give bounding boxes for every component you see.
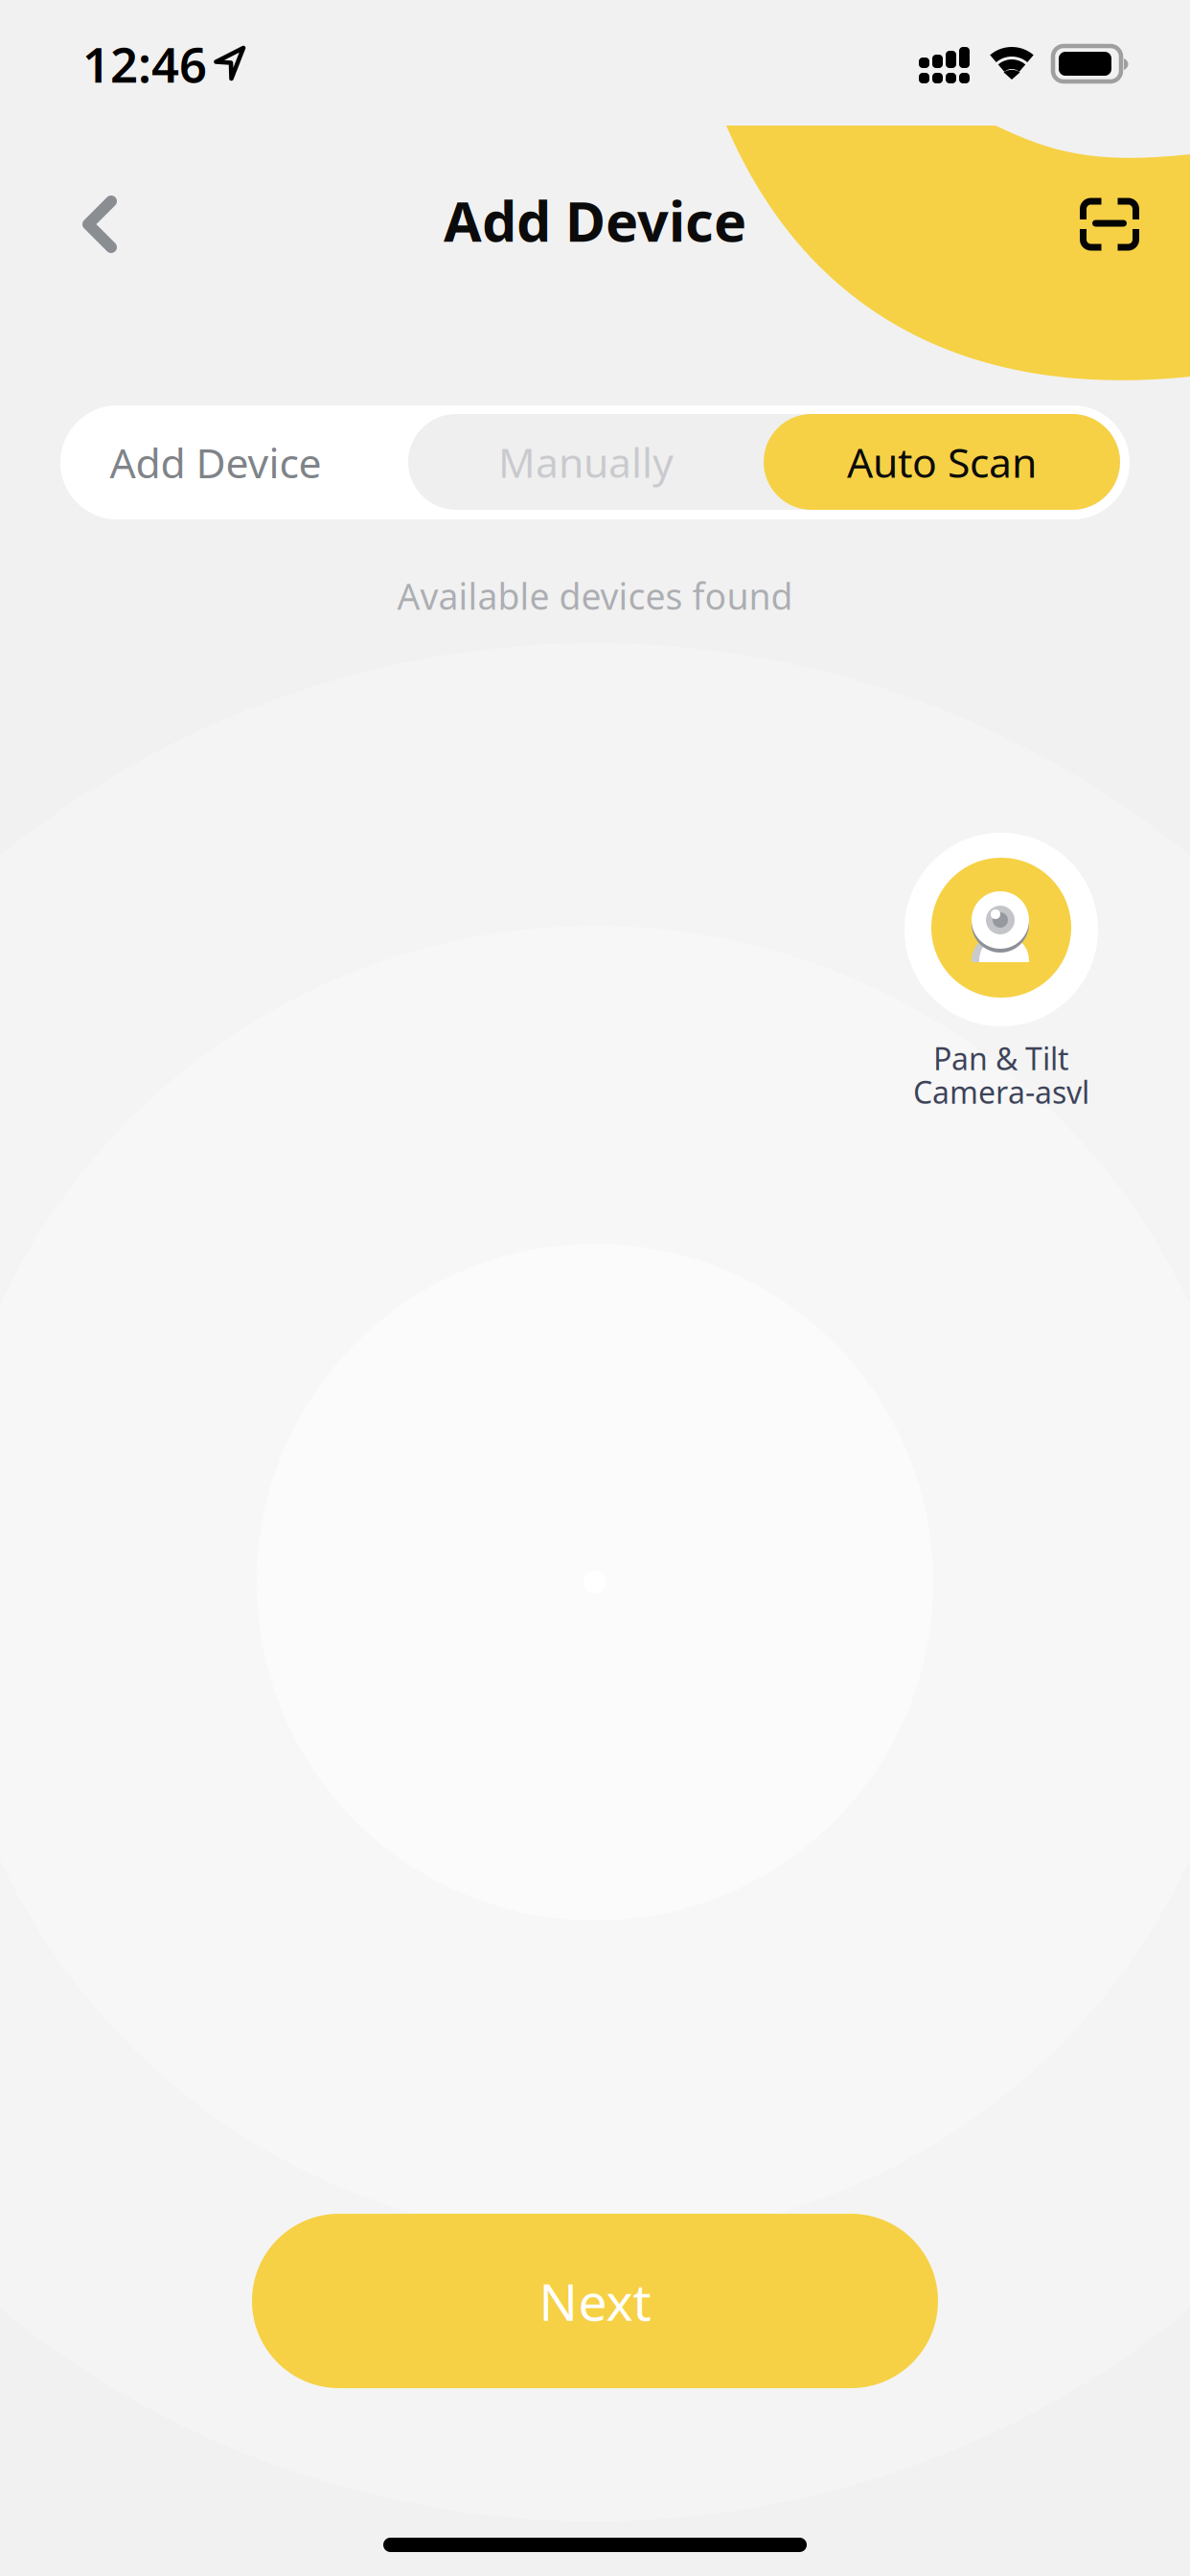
staticText: Next <box>539 2267 651 2335</box>
button[interactable]: Back <box>42 167 157 282</box>
staticText: Available devices found <box>397 572 793 620</box>
button[interactable]: Auto Scan <box>764 414 1120 510</box>
staticText: Add Device <box>110 435 321 490</box>
button[interactable]: Next <box>252 2214 938 2388</box>
staticText: 12:46 <box>82 32 207 96</box>
staticText: Pan & Tilt <box>933 1038 1069 1079</box>
staticText: Auto Scan <box>847 435 1037 489</box>
staticText: Add Device <box>444 184 746 257</box>
button[interactable]: Manually <box>408 414 764 510</box>
staticText: Camera-asvl <box>913 1071 1089 1112</box>
staticText: Manually <box>498 435 674 489</box>
button[interactable]: Scan QR code <box>1057 172 1162 277</box>
button[interactable]: Add Device <box>60 405 371 519</box>
button[interactable]: Pan & Tilt <box>904 833 1098 1113</box>
